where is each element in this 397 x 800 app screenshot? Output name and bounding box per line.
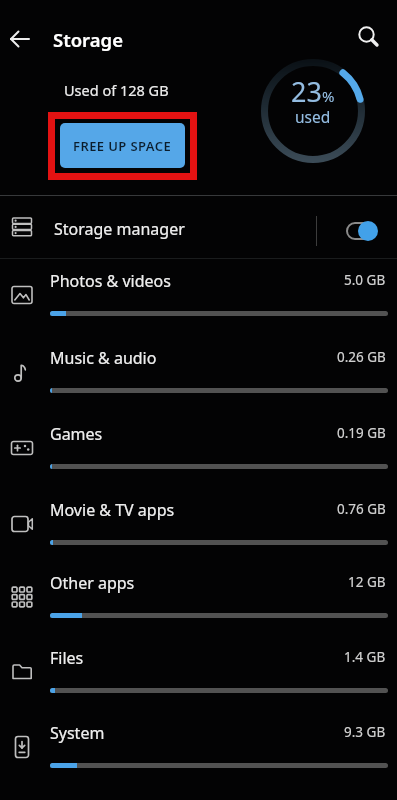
staticText: FREE UP SPACE — [73, 137, 172, 155]
button[interactable]: Games — [0, 413, 397, 488]
staticText: 9.3 GB — [344, 723, 386, 741]
staticText: Photos & videos — [50, 270, 171, 292]
button[interactable]: System — [0, 712, 397, 787]
staticText: Movie & TV apps — [50, 499, 175, 521]
staticText: 23% — [291, 73, 335, 110]
button[interactable] — [5, 25, 35, 55]
button[interactable]: FREE UP SPACE — [60, 123, 185, 168]
staticText: 0.26 GB — [337, 348, 386, 366]
button[interactable]: Movie & TV apps — [0, 489, 397, 564]
button[interactable]: Photos & videos — [0, 260, 397, 335]
button[interactable] — [340, 214, 384, 248]
staticText: 5.0 GB — [344, 271, 386, 289]
staticText: used — [295, 106, 331, 127]
staticText: Used of 128 GB — [64, 80, 169, 100]
staticText: Storage — [53, 27, 123, 52]
staticText: 1.4 GB — [344, 648, 386, 666]
staticText: Other apps — [50, 572, 135, 594]
staticText: System — [50, 722, 105, 744]
staticText: 0.19 GB — [337, 424, 386, 442]
staticText: Games — [50, 423, 103, 445]
button[interactable]: Other apps — [0, 562, 397, 637]
staticText: 12 GB — [348, 573, 386, 591]
staticText: Music & audio — [50, 347, 157, 369]
button[interactable]: Files — [0, 637, 397, 712]
staticText: Files — [50, 647, 84, 669]
button[interactable]: Music & audio — [0, 337, 397, 412]
staticText: Storage manager — [54, 218, 185, 240]
button[interactable]: Storage manager — [0, 196, 397, 258]
button[interactable] — [352, 20, 386, 54]
staticText: 0.76 GB — [337, 500, 386, 518]
